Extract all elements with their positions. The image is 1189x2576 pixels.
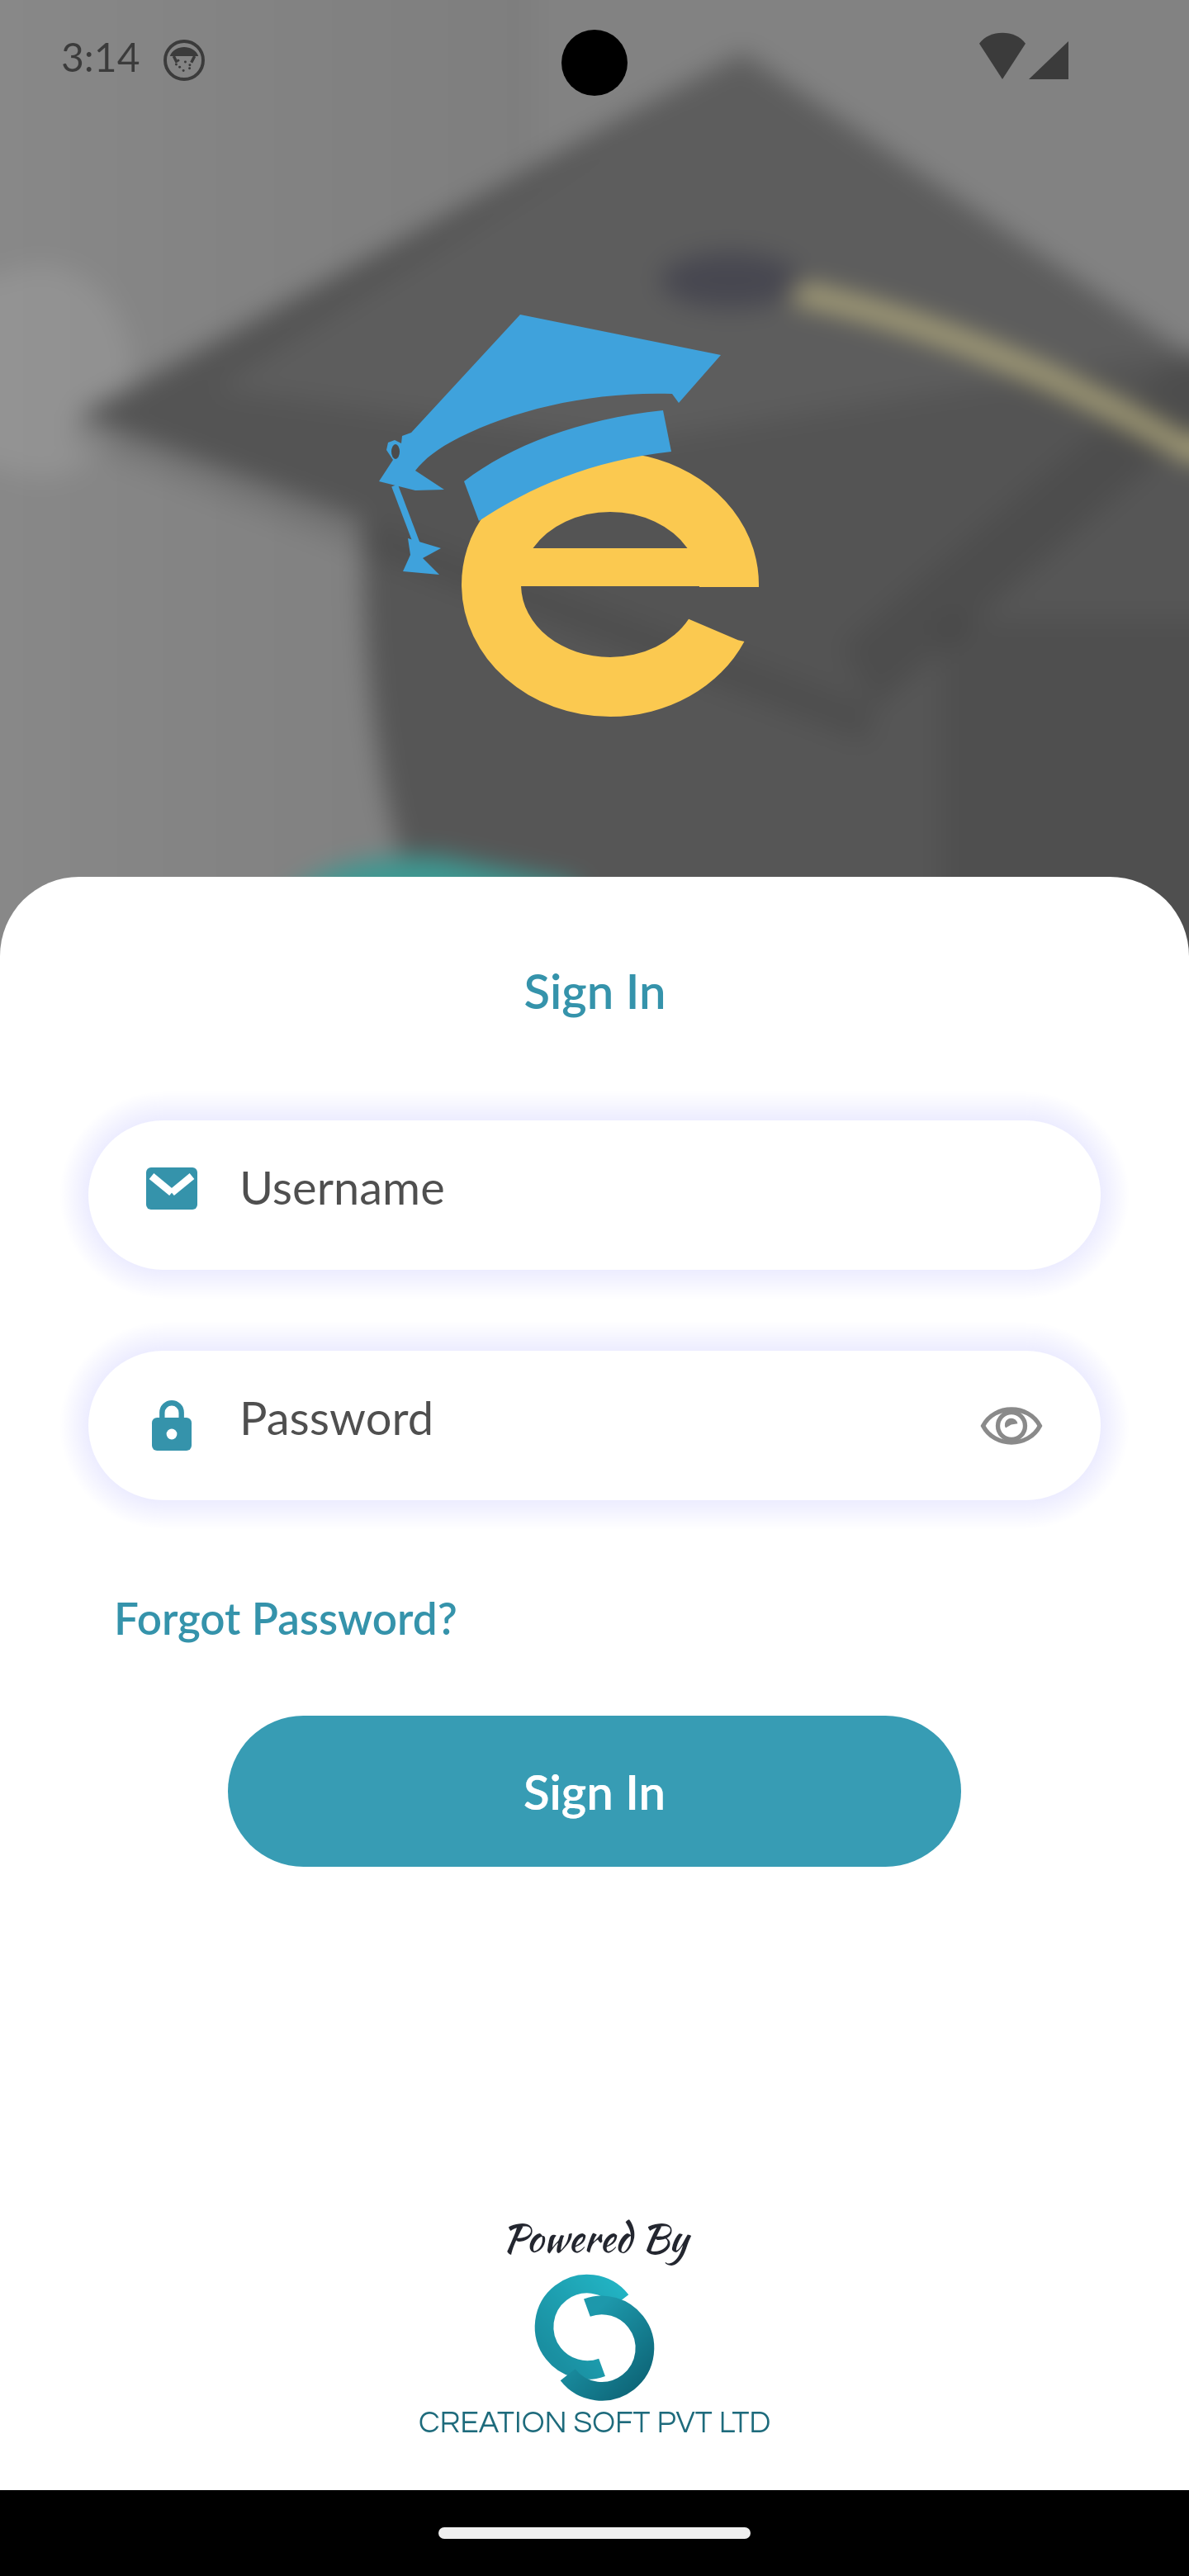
staticText: 3:14 — [61, 33, 140, 81]
staticText: CREATION SOFT PVT LTD — [419, 2408, 771, 2439]
button[interactable]: Show password — [969, 1383, 1054, 1469]
button[interactable]: Forgot Password? — [104, 1584, 467, 1653]
staticText: Username — [239, 1159, 445, 1215]
button[interactable]: Password — [88, 1351, 1101, 1500]
staticText: Sign In — [523, 1763, 666, 1821]
staticText: Forgot Password? — [114, 1592, 457, 1645]
button[interactable]: Username — [88, 1120, 1101, 1270]
staticText: Password — [239, 1390, 434, 1445]
staticText: Powered By — [502, 2209, 688, 2266]
button[interactable]: Sign In — [228, 1716, 961, 1867]
staticText: Sign In — [523, 962, 666, 1020]
